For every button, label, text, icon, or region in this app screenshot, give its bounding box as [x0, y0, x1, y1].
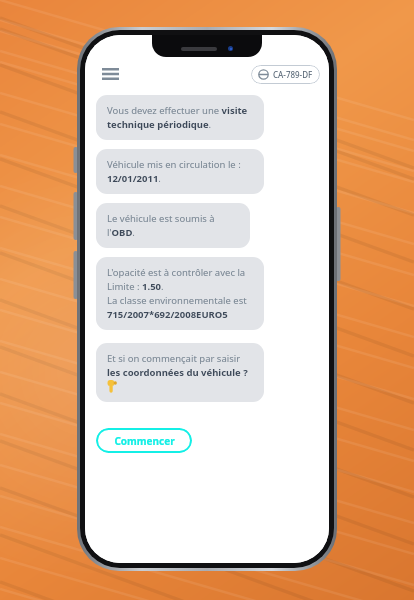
staticText: Véhicule mis en circulation le : 12/01/2…: [107, 158, 241, 185]
staticText: L'opacité est à contrôler avec la Limite…: [107, 266, 247, 321]
button[interactable]: L'opacité est à contrôler avec la Limite…: [96, 257, 264, 330]
button[interactable]: Le véhicule est soumis à l'OBD.: [96, 203, 250, 248]
staticText: Et si on commençait par saisir les coord…: [107, 352, 248, 379]
staticText: Commencer: [114, 434, 175, 448]
staticText: CA-789-DF: [273, 69, 313, 80]
staticText: Vous devez effectuer une visite techniqu…: [107, 104, 253, 131]
button[interactable]: Véhicule mis en circulation le : 12/01/2…: [96, 149, 264, 194]
button[interactable]: Vous devez effectuer une visite techniqu…: [96, 95, 264, 140]
button[interactable]: Et si on commençait par saisir les coord…: [96, 343, 264, 402]
button[interactable]: Menu: [95, 59, 125, 89]
button[interactable]: CA-789-DF: [251, 65, 320, 84]
button[interactable]: Commencer: [96, 428, 192, 453]
staticText: Le véhicule est soumis à l'OBD.: [107, 212, 239, 239]
